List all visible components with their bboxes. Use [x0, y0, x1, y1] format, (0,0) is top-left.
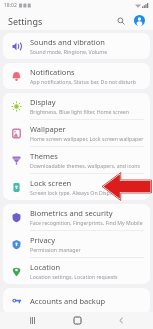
staticText: Home screen wallpaper, Lock screen wallp… — [30, 135, 144, 142]
button[interactable]: Lock screen — [3, 174, 150, 200]
staticText: Sounds and vibration — [30, 37, 105, 47]
staticText: Permission manager — [30, 246, 81, 253]
button[interactable]: Search — [114, 14, 127, 27]
staticText: Display — [30, 97, 56, 107]
staticText: Brightness, Blue light filter, Home scre… — [30, 108, 129, 115]
staticText: Downloadable themes, wallpapers, and ico… — [30, 162, 140, 169]
staticText: Location — [30, 262, 61, 272]
staticText: App notifications, Status bar, Do not di… — [30, 78, 136, 85]
button[interactable]: Wallpaper — [3, 120, 150, 146]
button[interactable]: Notifications — [3, 63, 150, 89]
button[interactable]: Home — [65, 312, 89, 329]
button[interactable]: Account — [133, 14, 146, 27]
button[interactable]: Back — [109, 312, 133, 329]
staticText: Screen lock type, Always On Display — [30, 189, 117, 196]
button[interactable]: Biometrics and security — [3, 204, 150, 230]
staticText: Notifications — [30, 67, 75, 77]
staticText: Lock screen — [30, 178, 72, 188]
button[interactable]: Sounds and vibration — [3, 33, 150, 59]
staticText: Accounts and backup — [30, 296, 106, 306]
button[interactable]: Location — [3, 258, 150, 284]
staticText: Location settings, Location requests — [30, 273, 118, 280]
staticText: Settings — [8, 15, 43, 27]
staticText: Themes — [30, 151, 58, 161]
staticText: Sound mode, Ringtone, Volume — [30, 48, 108, 55]
staticText: Wallpaper — [30, 124, 66, 134]
button[interactable]: Themes — [3, 147, 150, 173]
staticText: Biometrics and security — [30, 208, 113, 218]
staticText: Privacy — [30, 235, 56, 245]
staticText: 18:02 — [4, 2, 17, 9]
button[interactable]: Recents — [20, 312, 44, 329]
button[interactable]: Privacy — [3, 231, 150, 257]
staticText: Face recognition, Fingerprints, Find My … — [30, 219, 143, 226]
button[interactable]: Accounts and backup — [3, 288, 150, 314]
button[interactable]: Display — [3, 93, 150, 119]
